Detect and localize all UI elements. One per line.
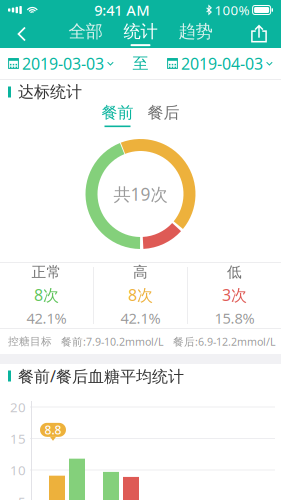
staticText: 餐后:6.9-12.2mmol/L: [173, 334, 276, 349]
button[interactable]: 2019-04-03: [167, 48, 273, 78]
staticText: 15.8%: [214, 308, 254, 328]
button[interactable]: Share: [242, 20, 276, 48]
staticText: 42.1%: [120, 308, 160, 328]
staticText: 5: [18, 493, 26, 500]
staticText: 20: [10, 398, 26, 416]
staticText: 餐前/餐后血糖平均统计: [18, 365, 184, 387]
button[interactable]: 全部: [58, 20, 113, 48]
staticText: 低: [227, 263, 242, 281]
staticText: 8.8: [44, 422, 61, 438]
staticText: 共19次: [113, 182, 167, 205]
staticText: 餐前:7.9-10.2mmol/L: [61, 334, 164, 349]
staticText: 高: [133, 263, 148, 281]
staticText: 至: [132, 54, 148, 73]
staticText: 3次: [222, 284, 247, 305]
staticText: 全部: [68, 21, 102, 42]
staticText: 2019-03-03: [22, 53, 104, 74]
staticText: 正常: [31, 263, 61, 281]
staticText: 42.1%: [26, 308, 66, 328]
staticText: 统计: [123, 21, 157, 42]
staticText: 10: [10, 461, 26, 479]
button[interactable]: 统计: [113, 20, 168, 48]
staticText: 餐前: [101, 103, 133, 123]
staticText: 8次: [34, 284, 59, 305]
button[interactable]: 餐后: [145, 104, 181, 126]
staticText: 餐后: [147, 103, 179, 123]
staticText: 9:41 AM: [94, 0, 149, 20]
button[interactable]: 2019-03-03: [8, 48, 114, 78]
staticText: 达标统计: [18, 82, 82, 102]
staticText: 8次: [128, 284, 153, 305]
staticText: 100%: [215, 1, 250, 19]
button[interactable]: Back: [5, 20, 39, 48]
staticText: 控糖目标: [8, 335, 52, 348]
button[interactable]: 餐前: [99, 104, 135, 126]
staticText: 2019-04-03: [181, 53, 263, 74]
staticText: 趋势: [178, 21, 212, 42]
button[interactable]: 趋势: [168, 20, 223, 48]
staticText: 15: [10, 430, 26, 447]
